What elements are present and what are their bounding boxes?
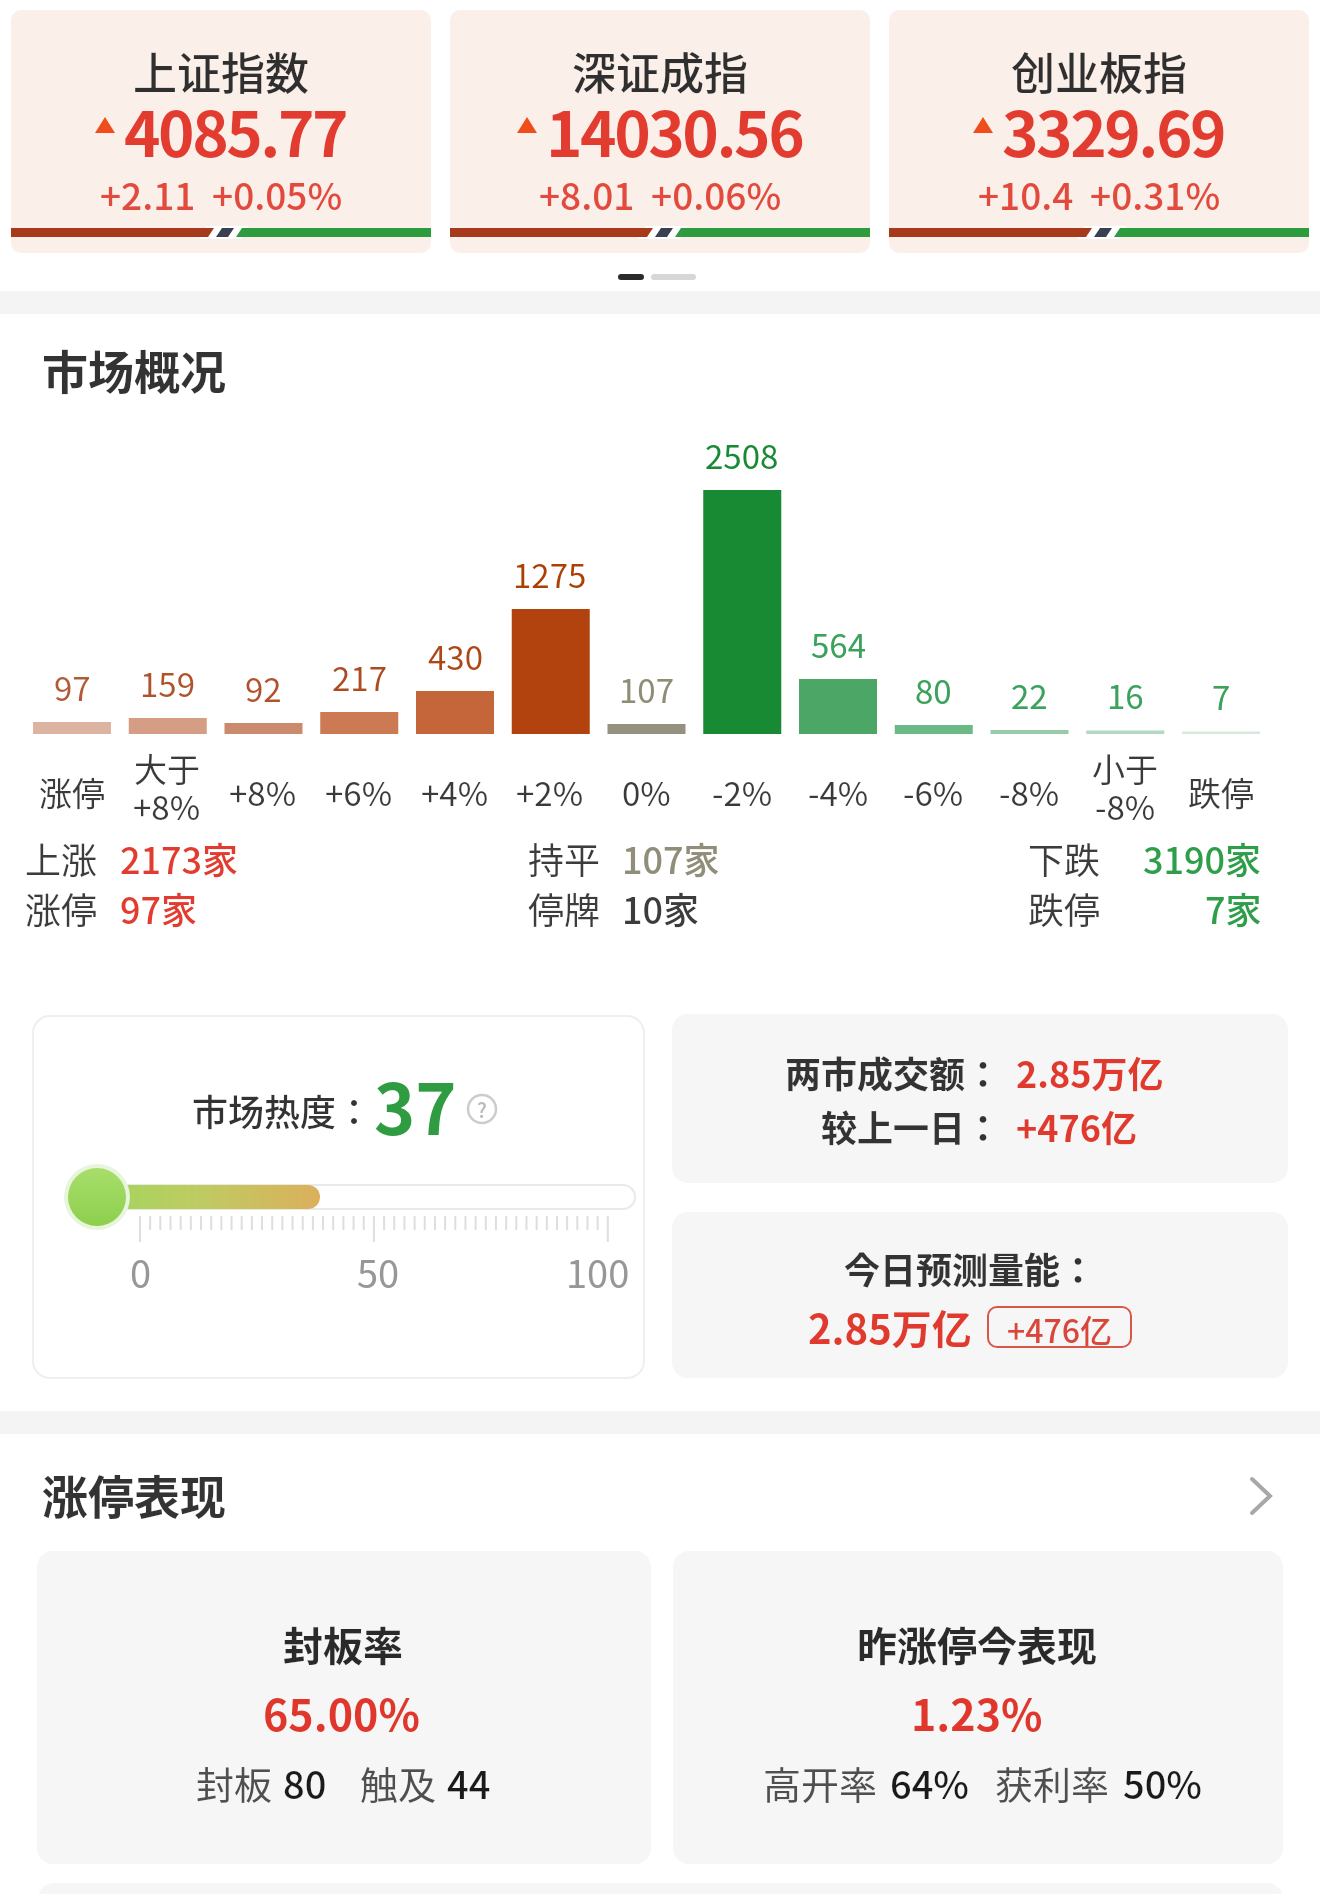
staticText: 上涨 <box>25 832 98 884</box>
staticText: 107家 <box>622 832 720 884</box>
staticText: 2.85万亿 <box>808 1298 972 1356</box>
button[interactable] <box>32 1015 645 1379</box>
staticText: 跌停 <box>1188 768 1254 816</box>
staticText: +8% <box>133 782 201 830</box>
staticText: 92 <box>245 664 282 712</box>
staticText: 2508 <box>705 431 779 479</box>
staticText: 564 <box>811 620 866 668</box>
staticText: 22 <box>1011 671 1048 719</box>
staticText: 14030.56 <box>546 85 803 165</box>
staticText: +8% <box>229 768 297 816</box>
staticText: 217 <box>332 653 387 701</box>
staticText: 7 <box>1212 672 1231 720</box>
staticText: 触及 <box>360 1755 437 1810</box>
staticText: 65.00% <box>263 1681 420 1743</box>
staticText: 7家 <box>1205 882 1262 934</box>
staticText: +2.11 +0.05% <box>100 167 343 221</box>
staticText: 50% <box>1123 1755 1203 1810</box>
staticText: 430 <box>428 632 483 680</box>
staticText: 市场概况 <box>42 336 226 403</box>
button[interactable] <box>0 1455 1320 1535</box>
staticText: +476亿 <box>1007 1306 1112 1348</box>
staticText: 市场热度： <box>192 1084 373 1136</box>
staticText: 97家 <box>120 882 198 934</box>
staticText: 2.85万亿 <box>1016 1046 1164 1098</box>
staticText: 获利率 <box>995 1755 1110 1810</box>
staticText: -2% <box>712 768 773 816</box>
staticText: 0% <box>622 768 671 816</box>
staticText: 小于 <box>1092 744 1158 792</box>
staticText: 封板 <box>196 1755 273 1810</box>
staticText: 10家 <box>622 882 700 934</box>
staticText: 16 <box>1107 671 1144 719</box>
staticText: 44 <box>447 1755 491 1810</box>
staticText: ? <box>477 1095 487 1124</box>
staticText: 大于 <box>134 744 200 792</box>
staticText: 50 <box>357 1244 400 1299</box>
staticText: 停牌 <box>528 882 601 934</box>
staticText: 昨涨停今表现 <box>857 1615 1097 1673</box>
staticText: 跌停 <box>1028 882 1101 934</box>
staticText: +6% <box>325 768 393 816</box>
staticText: 64% <box>890 1755 970 1810</box>
staticText: 创业板指 <box>1011 39 1187 103</box>
button[interactable] <box>11 10 431 253</box>
button[interactable] <box>672 1014 1288 1183</box>
button[interactable] <box>673 1551 1283 1864</box>
button[interactable] <box>889 10 1309 253</box>
staticText: 持平 <box>528 832 601 884</box>
button[interactable] <box>37 1551 651 1864</box>
staticText: 涨停 <box>25 882 98 934</box>
staticText: -4% <box>808 768 869 816</box>
staticText: 159 <box>140 659 195 707</box>
staticText: 高开率 <box>763 1755 878 1810</box>
staticText: 两市成交额： <box>785 1046 1002 1098</box>
staticText: +476亿 <box>1016 1100 1137 1152</box>
staticText: 1.23% <box>911 1681 1043 1743</box>
staticText: 97 <box>54 663 91 711</box>
staticText: 107 <box>619 665 674 713</box>
staticText: -8% <box>999 768 1060 816</box>
staticText: +8.01 +0.06% <box>539 167 782 221</box>
staticText: 今日预测量能： <box>844 1242 1097 1294</box>
button[interactable] <box>450 10 870 253</box>
staticText: 0 <box>130 1244 152 1299</box>
staticText: 80 <box>283 1755 327 1810</box>
staticText: 下跌 <box>1028 832 1101 884</box>
staticText: 4085.77 <box>124 85 347 165</box>
staticText: +10.4 +0.31% <box>978 167 1221 221</box>
staticText: 封板率 <box>283 1615 403 1673</box>
staticText: -6% <box>903 768 964 816</box>
staticText: 37 <box>374 1054 457 1155</box>
staticText: 深证成指 <box>572 39 748 103</box>
staticText: 1275 <box>513 550 587 598</box>
staticText: 涨停 <box>39 768 105 816</box>
staticText: 涨停表现 <box>42 1461 226 1528</box>
staticText: 上证指数 <box>133 39 309 103</box>
staticText: 3329.69 <box>1002 85 1225 165</box>
staticText: 100 <box>566 1244 630 1299</box>
staticText: 3190家 <box>1143 832 1262 884</box>
staticText: 2173家 <box>120 832 239 884</box>
staticText: 80 <box>915 666 952 714</box>
staticText: +2% <box>516 768 584 816</box>
staticText: 较上一日： <box>821 1100 1002 1152</box>
button[interactable] <box>672 1212 1288 1378</box>
staticText: -8% <box>1095 782 1156 830</box>
staticText: +4% <box>421 768 489 816</box>
